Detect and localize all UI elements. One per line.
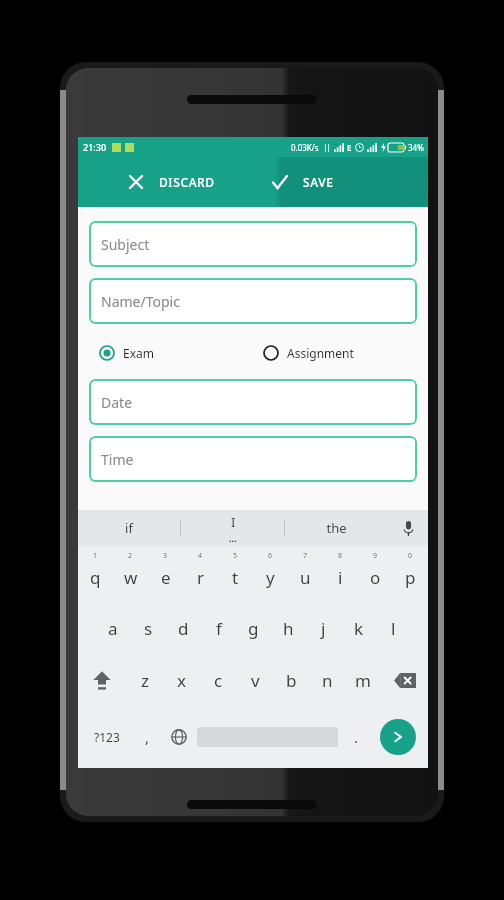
button[interactable]: if xyxy=(78,510,180,546)
staticText: E xyxy=(347,142,352,153)
button[interactable]: h xyxy=(271,602,306,654)
button[interactable]: v xyxy=(237,654,273,706)
staticText: 3 xyxy=(163,551,168,561)
staticText: c xyxy=(214,669,223,692)
staticText: 6 xyxy=(268,551,273,561)
staticText: i xyxy=(338,566,343,589)
staticText: Time xyxy=(101,450,134,469)
staticText: 4 xyxy=(198,551,203,561)
button[interactable]: Enter xyxy=(380,719,416,755)
staticText: h xyxy=(283,617,294,640)
button[interactable]: b xyxy=(273,654,309,706)
button[interactable]: m xyxy=(345,654,381,706)
button[interactable]: s xyxy=(131,602,166,654)
staticText: v xyxy=(251,669,260,692)
staticText: 2 xyxy=(128,551,133,561)
staticText: o xyxy=(370,566,381,589)
button[interactable]: , xyxy=(132,706,163,768)
staticText: if xyxy=(125,519,133,537)
staticText: s xyxy=(144,617,153,640)
button[interactable]: 7 xyxy=(288,546,323,602)
staticText: d xyxy=(178,617,189,640)
button[interactable]: a xyxy=(95,602,131,654)
button[interactable]: Date xyxy=(89,379,417,425)
staticText: t xyxy=(232,566,239,589)
button[interactable]: Shift xyxy=(78,654,126,706)
button[interactable]: Voice input xyxy=(388,510,428,546)
staticText: b xyxy=(286,669,297,692)
staticText: a xyxy=(108,617,118,640)
button[interactable]: c xyxy=(200,654,237,706)
button[interactable]: 2 xyxy=(113,546,148,602)
staticText: 21:30 xyxy=(83,141,107,153)
button[interactable]: DISCARD xyxy=(78,157,253,207)
staticText: 5 xyxy=(233,551,238,561)
staticText: 7 xyxy=(303,551,308,561)
button[interactable]: j xyxy=(306,602,341,654)
button[interactable]: Assignment xyxy=(253,333,417,373)
staticText: Exam xyxy=(123,345,154,361)
staticText: u xyxy=(300,566,311,589)
button[interactable]: 8 xyxy=(323,546,358,602)
button[interactable]: SAVE xyxy=(253,157,428,207)
button[interactable]: 0 xyxy=(393,546,428,602)
staticText: n xyxy=(322,669,333,692)
button[interactable]: Exam xyxy=(89,333,253,373)
staticText: 8 xyxy=(338,551,343,561)
button[interactable]: Name/Topic xyxy=(89,278,417,324)
staticText: x xyxy=(177,669,186,692)
staticText: , xyxy=(145,727,150,747)
button[interactable]: 4 xyxy=(183,546,218,602)
staticText: 0.03K/s xyxy=(291,142,319,153)
button[interactable]: z xyxy=(126,654,163,706)
button[interactable]: n xyxy=(309,654,345,706)
staticText: I xyxy=(231,513,236,531)
button[interactable]: ?123 xyxy=(82,706,132,768)
staticText: Date xyxy=(101,393,133,412)
button[interactable]: Backspace xyxy=(381,654,428,706)
button[interactable]: 5 xyxy=(218,546,253,602)
staticText: e xyxy=(161,566,171,589)
staticText: . xyxy=(354,727,359,747)
button[interactable]: . xyxy=(341,706,372,768)
button[interactable]: I xyxy=(181,510,284,546)
staticText: j xyxy=(321,617,326,640)
button[interactable]: Subject xyxy=(89,221,417,267)
staticText: DISCARD xyxy=(159,174,215,190)
staticText: 34% xyxy=(408,142,424,153)
staticText: p xyxy=(405,566,416,589)
button[interactable]: k xyxy=(341,602,376,654)
staticText: ?123 xyxy=(94,729,120,745)
staticText: Assignment xyxy=(287,345,354,361)
staticText: SAVE xyxy=(303,174,334,190)
button[interactable]: d xyxy=(166,602,201,654)
staticText: the xyxy=(326,519,347,537)
staticText: l xyxy=(391,617,396,640)
button[interactable]: Change language xyxy=(163,706,194,768)
staticText: Name/Topic xyxy=(101,292,180,311)
staticText: Subject xyxy=(101,235,150,254)
button[interactable]: 3 xyxy=(148,546,183,602)
staticText: k xyxy=(354,617,364,640)
button[interactable]: x xyxy=(163,654,200,706)
staticText: 0 xyxy=(408,551,413,561)
staticText: g xyxy=(248,617,259,640)
staticText: z xyxy=(141,669,149,692)
staticText: m xyxy=(355,669,371,692)
button[interactable]: f xyxy=(201,602,236,654)
staticText: 1 xyxy=(93,551,98,561)
staticText: ... xyxy=(229,532,237,544)
button[interactable]: g xyxy=(236,602,271,654)
staticText: q xyxy=(90,566,101,589)
button[interactable]: Time xyxy=(89,436,417,482)
staticText: 9 xyxy=(373,551,378,561)
button[interactable]: the xyxy=(285,510,388,546)
button[interactable]: l xyxy=(376,602,411,654)
staticText: r xyxy=(197,566,205,589)
staticText: w xyxy=(124,566,138,589)
button[interactable]: 1 xyxy=(78,546,113,602)
button[interactable]: 9 xyxy=(358,546,393,602)
button[interactable]: 6 xyxy=(253,546,288,602)
staticText: y xyxy=(266,566,275,589)
